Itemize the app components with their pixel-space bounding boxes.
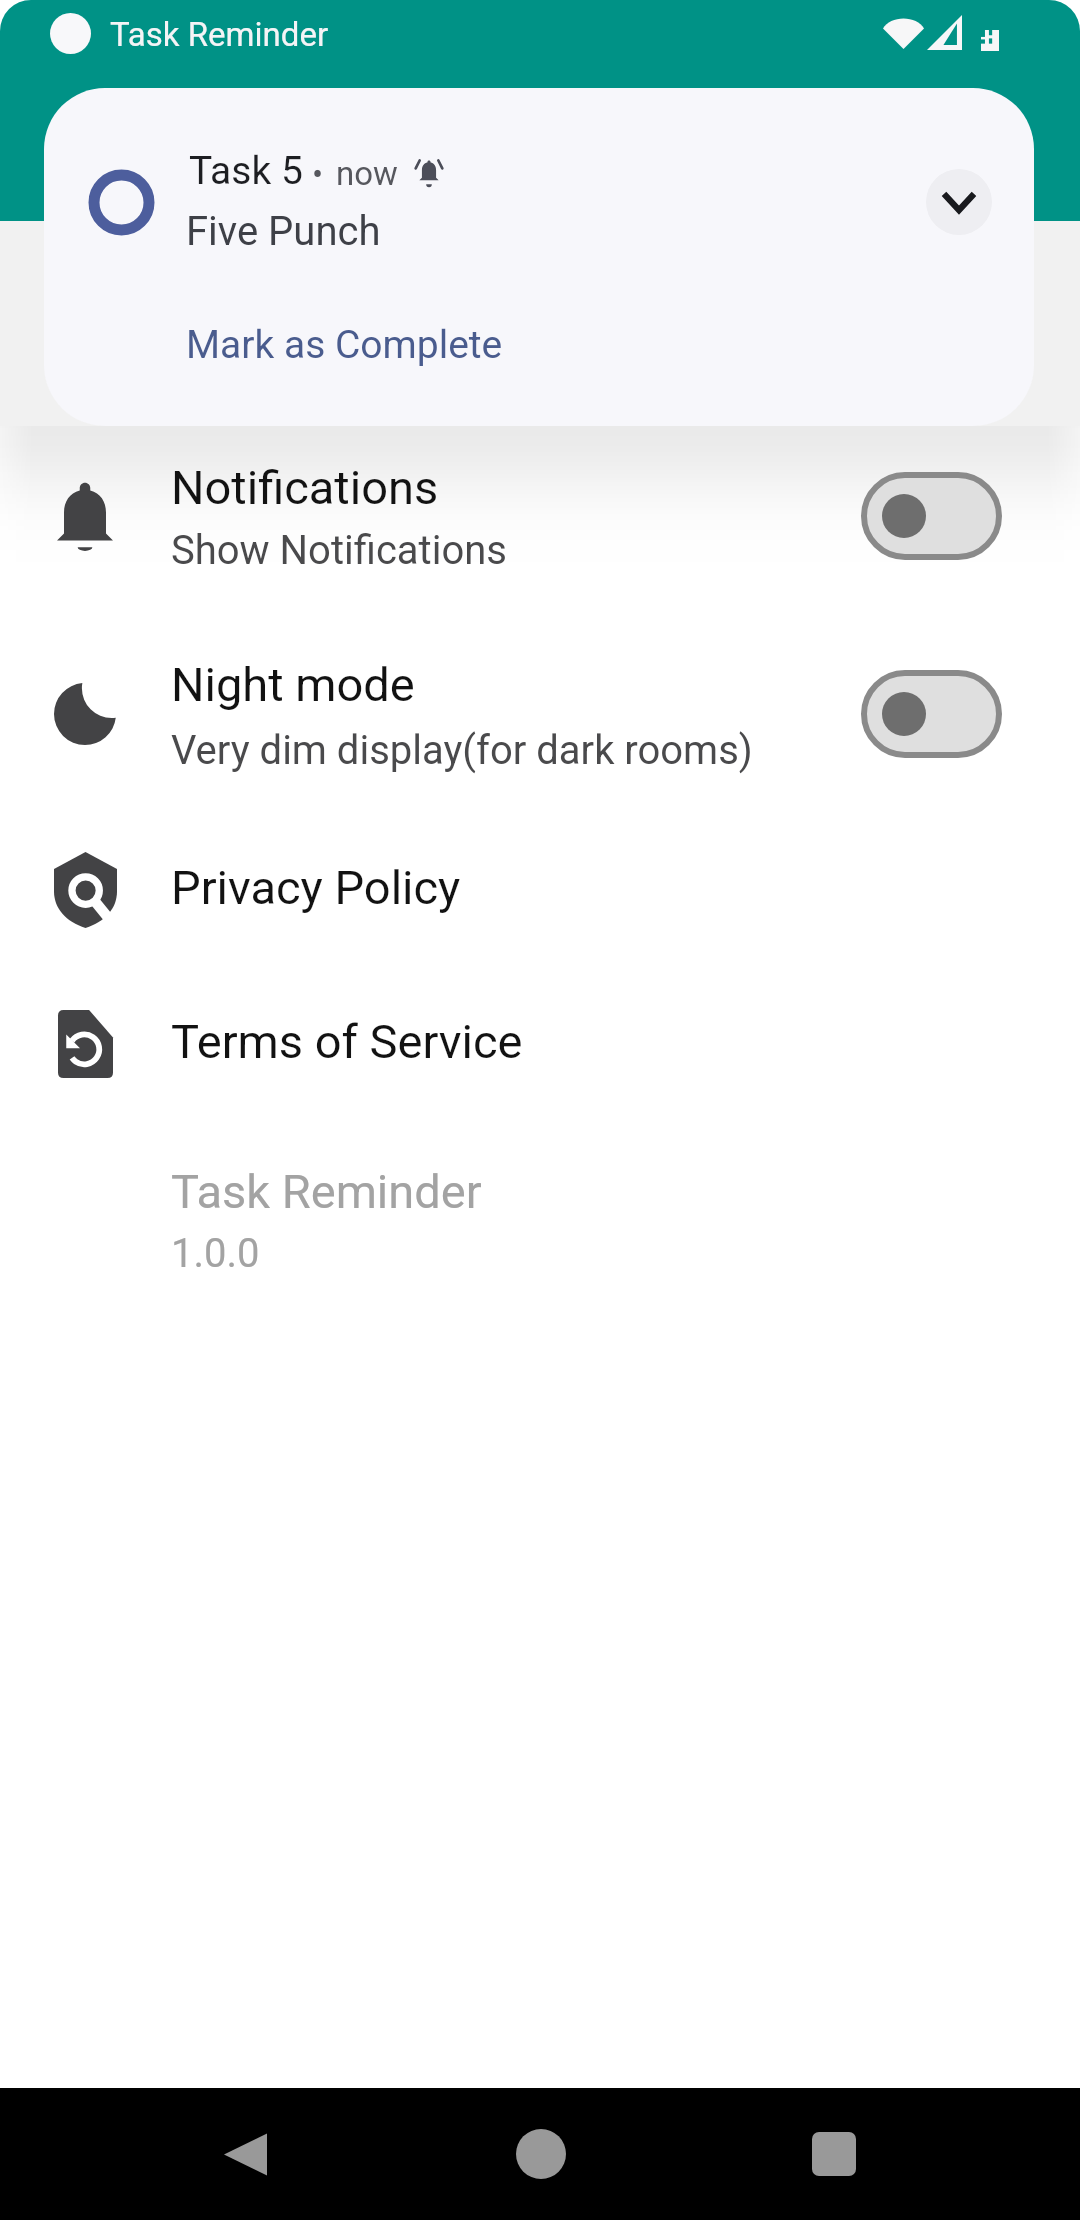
button[interactable]: Back bbox=[180, 2088, 310, 2220]
staticText: Task Reminder bbox=[110, 15, 329, 54]
staticText: Five Punch bbox=[186, 208, 381, 255]
staticText: Privacy Policy bbox=[171, 860, 461, 915]
button[interactable]: Mark as Complete bbox=[186, 322, 503, 368]
staticText: Very dim display(for dark rooms) bbox=[171, 727, 753, 774]
staticText: 1.0.0 bbox=[171, 1230, 260, 1277]
staticText: • bbox=[312, 155, 324, 194]
button[interactable] bbox=[0, 460, 1080, 574]
button[interactable] bbox=[0, 1014, 1080, 1069]
button[interactable]: Toggle night mode bbox=[861, 670, 1002, 758]
button[interactable] bbox=[0, 657, 1080, 774]
button[interactable]: Recent apps bbox=[769, 2088, 899, 2220]
button[interactable] bbox=[0, 860, 1080, 915]
staticText: Terms of Service bbox=[171, 1014, 523, 1069]
button[interactable]: Toggle show notifications bbox=[861, 472, 1002, 560]
staticText: Show Notifications bbox=[171, 527, 507, 574]
button[interactable]: Task 5 bbox=[44, 88, 1034, 426]
staticText: now bbox=[336, 154, 398, 193]
staticText: Task Reminder bbox=[171, 1164, 482, 1219]
staticText: Notifications bbox=[171, 460, 439, 515]
button[interactable]: Home bbox=[476, 2088, 606, 2220]
staticText: Task 5 bbox=[189, 148, 303, 194]
staticText: Night mode bbox=[171, 657, 415, 712]
staticText: Mark as Complete bbox=[186, 322, 503, 368]
button[interactable]: Expand notification bbox=[926, 169, 992, 235]
